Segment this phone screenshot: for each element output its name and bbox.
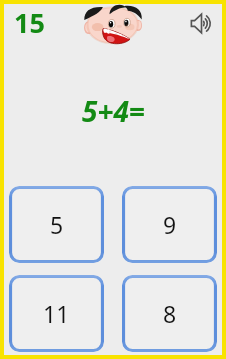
- button[interactable]: Sound: [190, 13, 213, 34]
- staticText: 5+4=: [82, 92, 145, 130]
- button[interactable]: 9: [122, 186, 217, 263]
- button[interactable]: 8: [122, 275, 217, 352]
- staticText: 15: [14, 4, 45, 41]
- button[interactable]: 5: [9, 186, 104, 263]
- staticText: 11: [43, 298, 70, 329]
- staticText: 9: [163, 209, 177, 240]
- button[interactable]: 11: [9, 275, 104, 352]
- staticText: 8: [163, 298, 177, 329]
- staticText: 5: [50, 209, 64, 240]
